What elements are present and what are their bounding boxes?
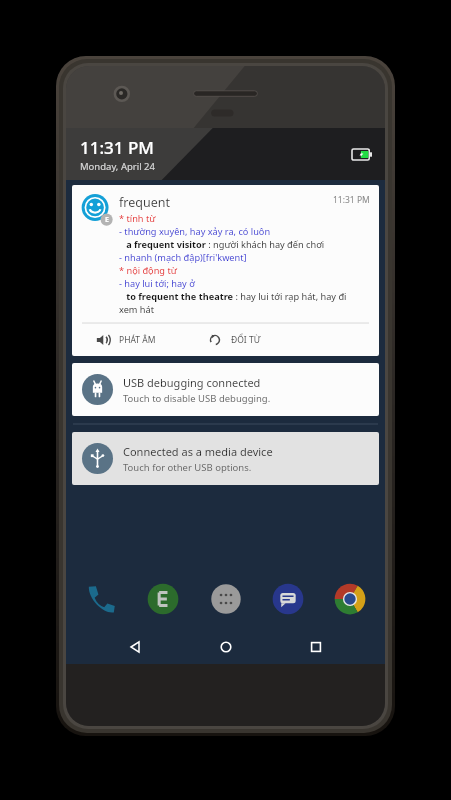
button[interactable]: Recent apps <box>294 630 338 664</box>
button[interactable]: PHÁT ÂM <box>94 329 158 351</box>
staticText: a frequent visitor : người khách hay đến… <box>119 238 325 251</box>
button[interactable]: All apps <box>205 578 247 620</box>
staticText: Monday, April 24 <box>80 160 155 173</box>
staticText: 11:31 PM <box>80 136 154 159</box>
staticText: - nhanh (mạch đập)[fri'kwent] <box>119 251 247 264</box>
staticText: E <box>105 215 109 225</box>
button[interactable]: Dictionary <box>142 578 184 620</box>
button[interactable]: Back <box>113 630 157 664</box>
button[interactable]: Connected as a media device <box>72 432 379 485</box>
staticText: 11:31 PM <box>333 194 370 206</box>
staticText: Touch to disable USB debugging. <box>123 392 271 405</box>
staticText: xem hát <box>119 303 154 316</box>
staticText: - thường xuyên, hay xảy ra, có luôn <box>119 225 271 238</box>
staticText: * nội động từ <box>119 264 177 277</box>
staticText: frequent <box>119 194 170 211</box>
button[interactable]: Chrome <box>329 578 371 620</box>
staticText: * tính từ <box>119 212 156 225</box>
button[interactable]: Home <box>204 630 248 664</box>
staticText: to frequent the theatre : hay lui tới rạ… <box>119 290 347 303</box>
button[interactable]: E <box>72 185 379 356</box>
button[interactable]: ĐỔI TỪ <box>206 329 263 351</box>
staticText: USB debugging connected <box>123 375 261 390</box>
staticText: PHÁT ÂM <box>119 334 156 346</box>
button[interactable]: Phone <box>80 578 122 620</box>
staticText: Touch for other USB options. <box>123 461 252 474</box>
button[interactable]: Messages <box>267 578 309 620</box>
staticText: ĐỔI TỪ <box>231 334 261 346</box>
staticText: Connected as a media device <box>123 444 273 459</box>
staticText: - hay lui tới; hay ở <box>119 277 195 290</box>
button[interactable]: USB debugging connected <box>72 363 379 416</box>
